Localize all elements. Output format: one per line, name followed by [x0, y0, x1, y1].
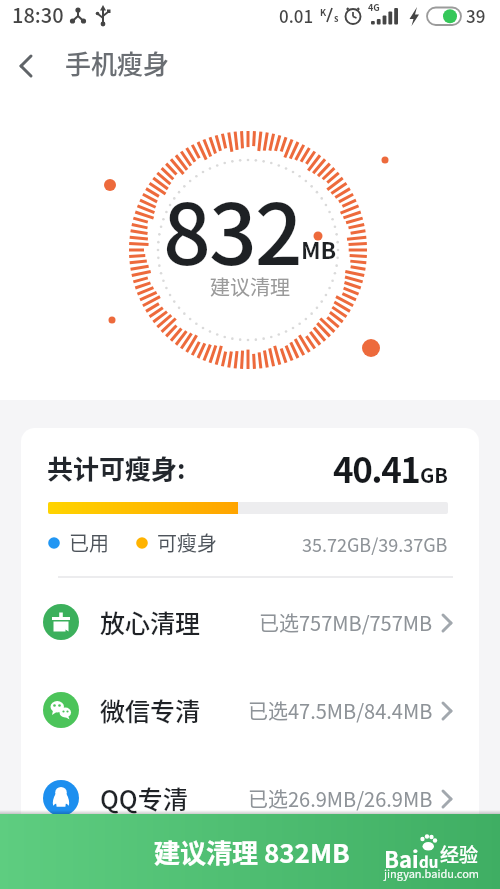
staticText: 放心清理	[100, 604, 201, 640]
staticText: 0.01	[279, 3, 314, 28]
staticText: 832	[163, 168, 301, 290]
button[interactable]: 微信专清	[21, 666, 479, 754]
button[interactable]: QQ专清	[21, 754, 479, 842]
staticText: MB	[301, 232, 337, 265]
staticText: 35.72GB/39.37GB	[302, 531, 448, 557]
staticText: QQ专清	[100, 780, 188, 816]
button[interactable]: 建议清理 832MB	[0, 814, 500, 889]
staticText: du	[419, 851, 439, 873]
staticText: s	[334, 12, 339, 25]
staticText: 建议清理	[210, 272, 290, 301]
staticText: GB	[420, 460, 448, 489]
staticText: 40.41	[333, 442, 420, 493]
button[interactable]: 手机瘦身	[0, 36, 500, 90]
button[interactable]: 放心清理	[21, 578, 479, 666]
staticText: 可瘦身	[157, 528, 217, 557]
staticText: 建议清理 832MB	[154, 833, 350, 871]
staticText: 共计可瘦身:	[47, 449, 186, 487]
staticText: Bai	[384, 842, 419, 874]
staticText: 18:30	[12, 0, 64, 29]
staticText: 微信专清	[100, 692, 201, 728]
staticText: 手机瘦身	[65, 44, 170, 82]
staticText: 经验	[440, 840, 479, 868]
staticText: 4G	[368, 1, 380, 14]
staticText: 39	[466, 3, 486, 28]
staticText: 已选26.9MB/26.9MB	[248, 784, 433, 813]
staticText: jingyan.baidu.com	[384, 865, 480, 881]
staticText: 已选757MB/757MB	[259, 608, 433, 637]
staticText: K	[320, 6, 327, 19]
staticText: 已选47.5MB/84.4MB	[248, 696, 433, 725]
staticText: 已用	[69, 528, 109, 557]
